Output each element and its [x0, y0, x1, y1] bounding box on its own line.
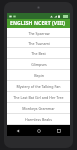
staticText: The Sparrow [28, 31, 50, 36]
button[interactable]: The Last Bat Girl and Her Tree [7, 92, 70, 103]
button[interactable]: Bepin [7, 70, 70, 81]
staticText: Glimpses [31, 62, 47, 67]
staticText: The Best [31, 51, 46, 56]
staticText: Harmless Beaks [25, 117, 52, 122]
button[interactable]: Harmless Beaks [7, 114, 70, 125]
staticText: Bepin [34, 73, 44, 78]
staticText: The Tsunami [28, 41, 50, 46]
staticText: Mystery of the Talking Fan [16, 84, 61, 89]
button[interactable]: Home [30, 125, 48, 136]
staticText: ENGLISH NCERT (VIII) [10, 20, 66, 27]
button[interactable]: Monkeys Grammar [7, 103, 70, 114]
button[interactable]: ENGLISH NCERT (VIII) [7, 19, 70, 28]
button[interactable]: Back [9, 125, 27, 136]
staticText: Monkeys Grammar [22, 106, 55, 111]
button[interactable]: The Sparrow [7, 28, 70, 38]
button[interactable]: Glimpses [7, 59, 70, 70]
button[interactable]: The Best [7, 48, 70, 59]
button[interactable]: The Tsunami [7, 38, 70, 48]
button[interactable]: Recent apps [50, 125, 68, 136]
staticText: The Last Bat Girl and Her Tree [13, 95, 64, 100]
button[interactable]: Mystery of the Talking Fan [7, 81, 70, 92]
